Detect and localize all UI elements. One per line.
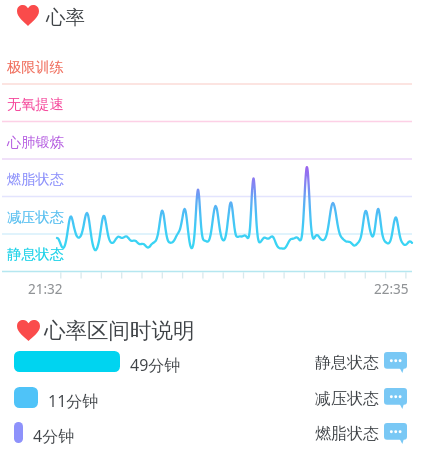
staticText: 心肺锻炼 bbox=[7, 133, 64, 151]
staticText: 22:35 bbox=[374, 280, 409, 298]
staticText: 21:32 bbox=[28, 280, 63, 298]
staticText: 49分钟 bbox=[130, 354, 181, 376]
button[interactable]: 静息状态 bbox=[315, 352, 407, 373]
staticText: 心率 bbox=[46, 5, 85, 30]
staticText: 燃脂状态 bbox=[7, 170, 64, 188]
staticText: 燃脂状态 bbox=[315, 424, 379, 444]
staticText: 11分钟 bbox=[48, 390, 99, 412]
other: 燃脂状态 bbox=[384, 423, 407, 444]
staticText: 静息状态 bbox=[315, 353, 379, 373]
staticText: 静息状态 bbox=[7, 245, 64, 263]
button[interactable]: 减压状态 bbox=[315, 388, 407, 409]
staticText: 心率区间时说明 bbox=[44, 317, 195, 344]
other: 静息状态 bbox=[384, 352, 407, 373]
staticText: 无氧提速 bbox=[7, 95, 64, 113]
button[interactable]: 燃脂状态 bbox=[315, 423, 407, 444]
staticText: 4分钟 bbox=[33, 425, 75, 447]
other: 减压状态 bbox=[384, 388, 407, 409]
staticText: 减压状态 bbox=[7, 208, 64, 226]
staticText: 减压状态 bbox=[315, 389, 379, 409]
staticText: 极限训练 bbox=[7, 58, 64, 76]
